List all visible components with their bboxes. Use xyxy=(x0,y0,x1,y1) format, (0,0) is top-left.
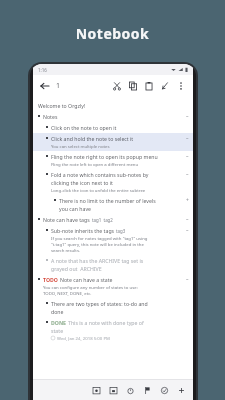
button[interactable]: Fold xyxy=(182,276,189,283)
staticText: – xyxy=(186,153,189,160)
button[interactable]: Fold a note which contains sub-notes by xyxy=(33,169,193,195)
staticText: If you search for notes tagged with "tag… xyxy=(51,235,148,241)
button[interactable]: Move xyxy=(157,78,173,94)
staticText: Sub-note inherits the tags xyxy=(51,227,116,234)
button[interactable]: Reminder xyxy=(122,382,139,399)
staticText: Note can have tags xyxy=(43,216,92,223)
staticText: Fold a note which contains sub-notes by xyxy=(51,171,149,178)
button[interactable]: Back xyxy=(37,78,53,94)
staticText: Wed, Jan 24, 2018 5:00 PM xyxy=(57,335,110,341)
staticText: Note can have a state xyxy=(60,276,113,283)
staticText: – xyxy=(186,216,189,223)
staticText: 1 xyxy=(56,81,61,91)
button[interactable]: Schedule xyxy=(88,382,105,399)
staticText: Click on the note to open it xyxy=(51,124,117,131)
staticText: clicking the icon next to it xyxy=(51,179,113,186)
button[interactable]: Fold xyxy=(182,153,189,160)
button[interactable]: Cut xyxy=(109,78,125,94)
button[interactable]: Click and hold the note to select it xyxy=(33,133,193,151)
staticText: tag3 xyxy=(116,228,126,234)
staticText: grayed out ARCHIVE xyxy=(51,265,102,272)
staticText: There are two types of states: to-do and xyxy=(51,300,148,307)
staticText: This is a note with done type of xyxy=(68,319,144,326)
button[interactable]: DONE xyxy=(33,317,193,343)
button[interactable]: TODO xyxy=(33,274,193,298)
button[interactable]: Deadline xyxy=(105,382,122,399)
staticText: You can configure any number of states t… xyxy=(43,284,138,290)
staticText: A note that has the ARCHIVE tag set is xyxy=(51,257,144,264)
button[interactable]: Fold xyxy=(182,227,189,234)
staticText: – xyxy=(186,113,189,120)
button[interactable]: Done xyxy=(156,382,173,399)
button[interactable]: A note that has the ARCHIVE tag set is xyxy=(33,255,193,274)
button[interactable]: Fold xyxy=(182,113,189,120)
staticText: you can have xyxy=(59,205,91,212)
staticText: state xyxy=(51,327,64,334)
button[interactable]: Flag xyxy=(139,382,156,399)
button[interactable]: Sub-note inherits the tags xyxy=(33,225,193,255)
button[interactable]: More options xyxy=(173,78,189,94)
staticText: Click and hold the note to select it xyxy=(51,135,134,142)
button[interactable]: There is no limit to the number of level… xyxy=(33,195,193,214)
button[interactable]: Paste xyxy=(141,78,157,94)
staticText: tag1 tag2 xyxy=(92,217,113,223)
button[interactable]: There are two types of states: to-do and xyxy=(33,298,193,317)
staticText: There is no limit to the number of level… xyxy=(59,197,156,204)
staticText: DONE xyxy=(51,319,68,326)
staticText: Notes xyxy=(43,113,58,120)
staticText: – xyxy=(186,171,189,178)
staticText: Fling the note left to open a different … xyxy=(51,161,139,167)
staticText: Long-click the icon to unfold the entire… xyxy=(51,187,146,193)
button[interactable]: Fold xyxy=(182,171,189,178)
button[interactable]: Fold xyxy=(182,135,189,142)
staticText: TODO xyxy=(43,276,60,283)
button[interactable]: Add xyxy=(173,382,190,399)
staticText: – xyxy=(186,227,189,234)
staticText: search results. xyxy=(51,247,81,253)
staticText: 1:16 xyxy=(38,67,47,73)
staticText: done xyxy=(51,308,64,315)
button[interactable]: Fold xyxy=(182,216,189,223)
button[interactable]: Note can have tags xyxy=(33,214,193,225)
button[interactable]: Copy xyxy=(125,78,141,94)
staticText: "t.tag1" query, this note will be includ… xyxy=(51,241,144,247)
staticText: TODO, NEXT, DONE, etc. xyxy=(43,290,92,296)
staticText: You can select multiple notes xyxy=(51,143,110,149)
staticText: – xyxy=(186,135,189,142)
button[interactable]: Fold xyxy=(182,197,189,204)
button[interactable]: Fling the note right to open its popup m… xyxy=(33,151,193,169)
staticText: Notebook xyxy=(0,24,225,43)
staticText: – xyxy=(186,276,189,283)
button[interactable]: Notes xyxy=(33,111,193,122)
staticText: Fling the note right to open its popup m… xyxy=(51,153,158,160)
staticText: Welcome to Orgzly! xyxy=(38,102,86,109)
staticText: + xyxy=(186,197,189,204)
button[interactable]: Click on the note to open it xyxy=(33,122,193,133)
